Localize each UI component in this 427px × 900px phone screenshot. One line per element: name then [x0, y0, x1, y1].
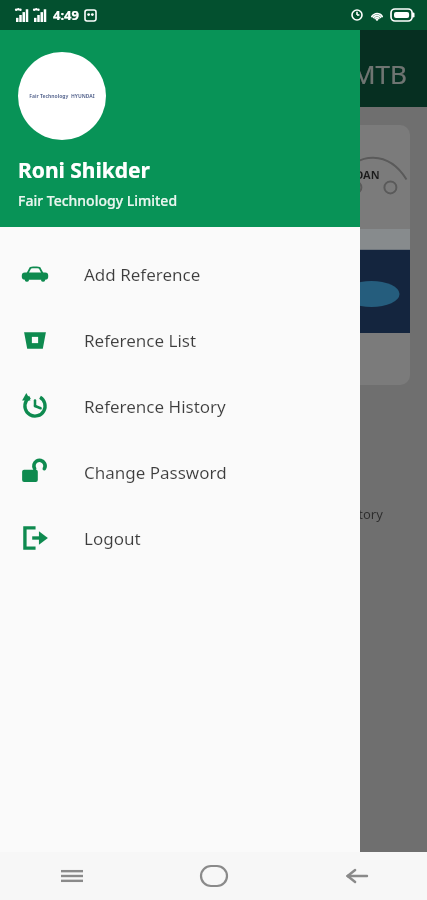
staticText: Reference History — [84, 395, 226, 418]
button[interactable]: Back — [285, 852, 427, 900]
button[interactable]: Reference History — [0, 373, 360, 439]
button[interactable]: Change Password — [0, 439, 360, 505]
button[interactable]: Logout — [0, 505, 360, 571]
button[interactable]: Add Reference — [0, 241, 360, 307]
staticText: Add Reference — [84, 263, 201, 286]
staticText: Reference List — [84, 329, 197, 352]
staticText: Fair Technology HYUNDAI — [18, 93, 106, 100]
staticText: Change Password — [84, 461, 227, 484]
staticText: 4:49 — [53, 6, 79, 24]
staticText: MTB — [352, 56, 407, 91]
staticText: OLOAN — [340, 167, 380, 182]
button[interactable]: Recent apps — [0, 852, 143, 900]
button[interactable]: Reference List — [0, 307, 360, 373]
staticText: Logout — [84, 527, 141, 550]
staticText: Fair Technology Limited — [18, 191, 178, 210]
button[interactable]: Home — [143, 852, 285, 900]
staticText: Roni Shikder — [18, 156, 151, 185]
staticText: story — [352, 505, 383, 523]
